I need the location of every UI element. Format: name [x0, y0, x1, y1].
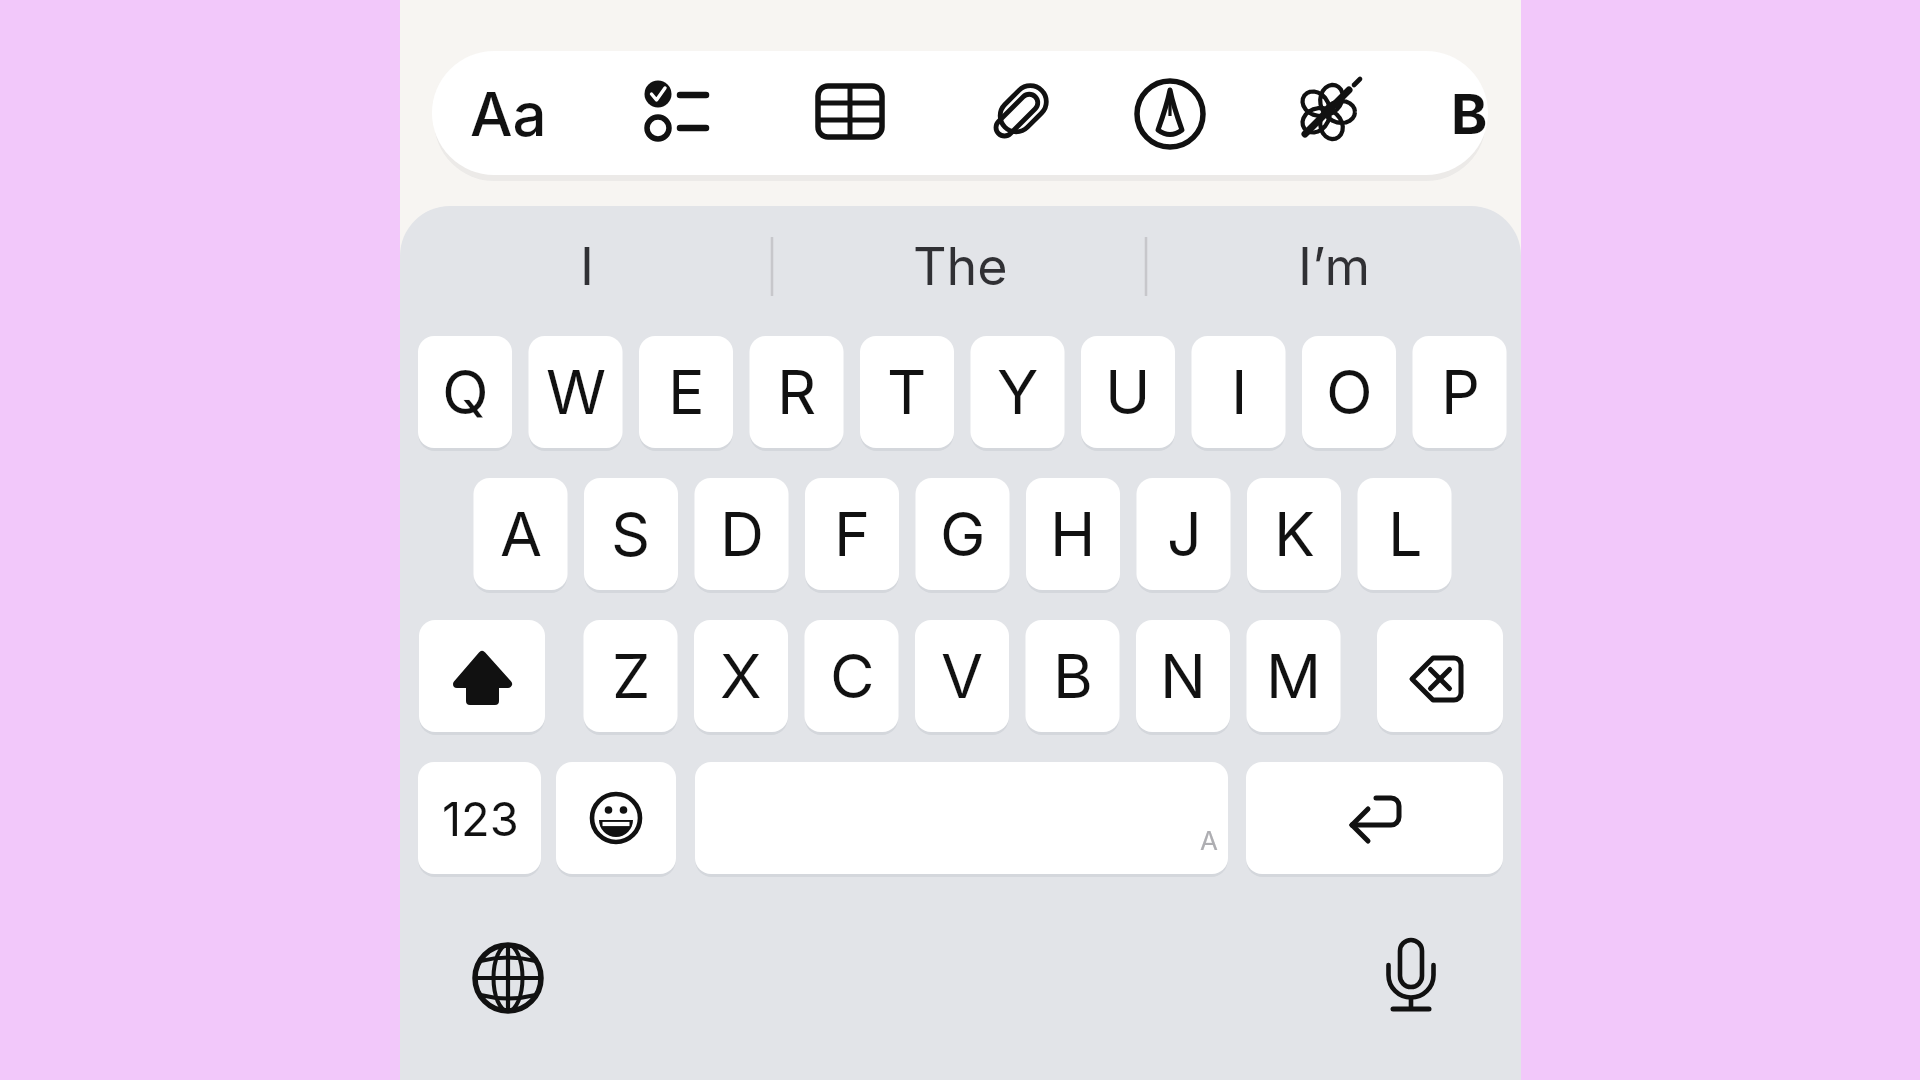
staticText: S: [611, 497, 651, 571]
staticText: E: [668, 355, 705, 429]
staticText: B: [1053, 639, 1093, 713]
staticText: C: [830, 639, 875, 713]
staticText: 123: [442, 790, 519, 847]
staticText: I’m: [1298, 235, 1370, 298]
staticText: P: [1441, 355, 1480, 429]
staticText: H: [1050, 497, 1096, 571]
staticText: I: [1231, 355, 1248, 429]
staticText: G: [940, 497, 986, 571]
staticText: K: [1274, 497, 1315, 571]
staticText: N: [1160, 639, 1206, 713]
staticText: Y: [997, 355, 1039, 429]
staticText: U: [1105, 355, 1151, 429]
staticText: J: [1167, 497, 1202, 571]
staticText: T: [887, 355, 927, 429]
staticText: F: [834, 497, 871, 571]
staticText: L: [1388, 497, 1423, 571]
staticText: D: [720, 497, 765, 571]
staticText: The: [913, 235, 1008, 298]
staticText: O: [1326, 355, 1373, 429]
staticText: Aa: [470, 78, 547, 151]
staticText: X: [720, 639, 762, 713]
staticText: R: [777, 355, 817, 429]
staticText: A: [1200, 825, 1218, 856]
staticText: B: [1451, 81, 1488, 148]
staticText: I: [580, 235, 594, 298]
staticText: Q: [442, 355, 489, 429]
staticText: Z: [612, 639, 651, 713]
staticText: W: [546, 355, 607, 429]
staticText: V: [941, 639, 984, 713]
staticText: M: [1266, 639, 1322, 713]
staticText: A: [500, 497, 543, 571]
